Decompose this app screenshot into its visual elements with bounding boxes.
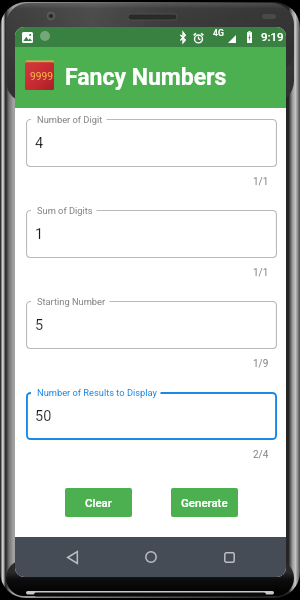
button[interactable]: 5 (26, 301, 277, 349)
staticText: Generate (181, 496, 228, 509)
staticText: 1/9 (253, 358, 269, 370)
button[interactable]: 4 (26, 119, 277, 167)
button[interactable]: 50 (26, 392, 277, 440)
staticText: 9:19 (261, 30, 284, 43)
staticText: 4 (35, 135, 44, 152)
staticText: 5 (35, 317, 44, 334)
staticText: 9999 (30, 71, 53, 83)
staticText: Number of Digit (37, 114, 103, 125)
button[interactable]: Generate (171, 488, 238, 517)
staticText: 1 (35, 226, 44, 243)
staticText: Starting Number (37, 296, 106, 307)
button[interactable]: 1 (26, 210, 277, 258)
staticText: 1/1 (253, 267, 269, 279)
button[interactable]: Clear (65, 488, 132, 517)
staticText: 1/1 (253, 176, 269, 188)
staticText: Fancy Numbers (65, 64, 227, 91)
button[interactable]: Home (129, 537, 173, 577)
staticText: Number of Results to Display (37, 387, 157, 398)
staticText: Sum of Digits (37, 205, 93, 216)
button[interactable]: Back (50, 537, 94, 577)
staticText: Clear (85, 496, 112, 509)
staticText: 2/4 (253, 449, 269, 461)
staticText: 4G (213, 28, 224, 38)
button[interactable]: Recent apps (207, 537, 251, 577)
staticText: 50 (35, 408, 52, 425)
